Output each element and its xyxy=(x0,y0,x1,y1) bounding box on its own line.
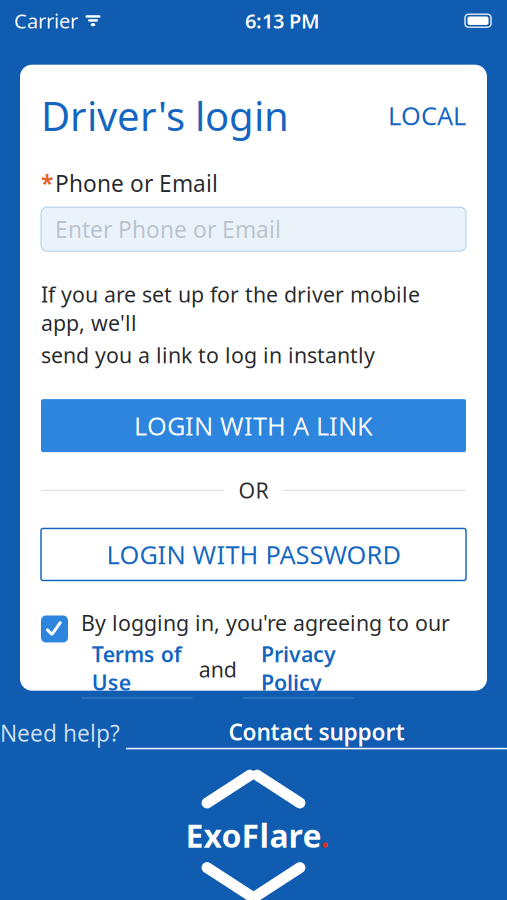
staticText: Driver's login xyxy=(41,89,289,142)
staticText: Contact support xyxy=(228,717,404,747)
staticText: 6:13 PM xyxy=(245,7,320,34)
button[interactable]: Enter Phone or Email xyxy=(41,207,466,251)
staticText: By logging in, you're agreeing to our xyxy=(81,608,450,637)
staticText: ExoFlare xyxy=(185,814,321,857)
button[interactable]: LOCAL xyxy=(388,99,466,132)
staticText: If you are set up for the driver mobile … xyxy=(41,280,420,337)
button[interactable]: Agree to terms xyxy=(41,615,68,642)
staticText: Carrier xyxy=(14,7,78,34)
staticText: Terms of Use xyxy=(92,640,182,696)
staticText: LOGIN WITH A LINK xyxy=(134,409,373,442)
staticText: send you a link to log in instantly xyxy=(41,341,375,369)
staticText: Privacy Policy xyxy=(261,640,336,696)
staticText: . xyxy=(320,814,329,857)
staticText: Enter Phone or Email xyxy=(55,214,281,244)
staticText: Phone or Email xyxy=(55,168,218,198)
staticText: LOCAL xyxy=(388,99,466,132)
button[interactable]: Terms of Use xyxy=(81,640,193,698)
staticText: LOGIN WITH PASSWORD xyxy=(106,538,400,571)
staticText: * xyxy=(41,168,53,198)
button[interactable]: Contact support xyxy=(126,717,507,749)
button[interactable]: Privacy Policy xyxy=(243,640,354,698)
button[interactable]: LOGIN WITH PASSWORD xyxy=(41,528,466,580)
staticText: Need help? xyxy=(0,718,120,748)
staticText: and xyxy=(193,655,243,683)
staticText: OR xyxy=(238,476,268,504)
button[interactable]: LOGIN WITH A LINK xyxy=(41,399,466,452)
